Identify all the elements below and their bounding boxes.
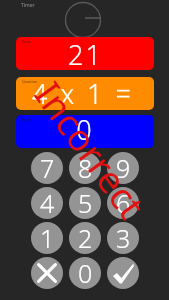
button[interactable]: 3 [107, 222, 139, 254]
button[interactable]: 9 [107, 152, 139, 184]
button[interactable]: 5 [69, 187, 101, 219]
button[interactable]: Submit [107, 257, 139, 289]
button[interactable]: 4 [31, 187, 63, 219]
staticText: 9 [116, 152, 131, 183]
staticText: 2 [78, 222, 93, 253]
staticText: 3 [116, 222, 131, 253]
staticText: 5 [78, 187, 93, 218]
button[interactable]: Question [16, 77, 154, 110]
staticText: 0 [76, 115, 94, 144]
staticText: Incorrect [24, 71, 158, 228]
button[interactable]: 2 [69, 222, 101, 254]
button[interactable]: Score [16, 37, 154, 70]
staticText: 4 [40, 187, 55, 218]
button[interactable]: 1 [31, 222, 63, 254]
staticText: 7 [40, 152, 55, 183]
button[interactable]: 7 [31, 152, 63, 184]
staticText: 0 [78, 257, 93, 288]
button[interactable]: 8 [69, 152, 101, 184]
staticText: Score [22, 39, 32, 44]
staticText: Timer [21, 2, 35, 9]
button[interactable]: Answer [16, 115, 154, 148]
staticText: 6 [116, 187, 131, 218]
staticText: Question [22, 79, 37, 84]
button[interactable]: Clear [31, 257, 63, 289]
button[interactable]: 0 [69, 257, 101, 289]
staticText: 4 x 1 = [32, 77, 134, 108]
staticText: 21 [68, 37, 103, 69]
staticText: 8 [78, 152, 93, 183]
staticText: Answer [22, 117, 35, 122]
staticText: 1 [40, 222, 55, 253]
button[interactable]: 6 [107, 187, 139, 219]
other: Timer [65, 2, 101, 38]
